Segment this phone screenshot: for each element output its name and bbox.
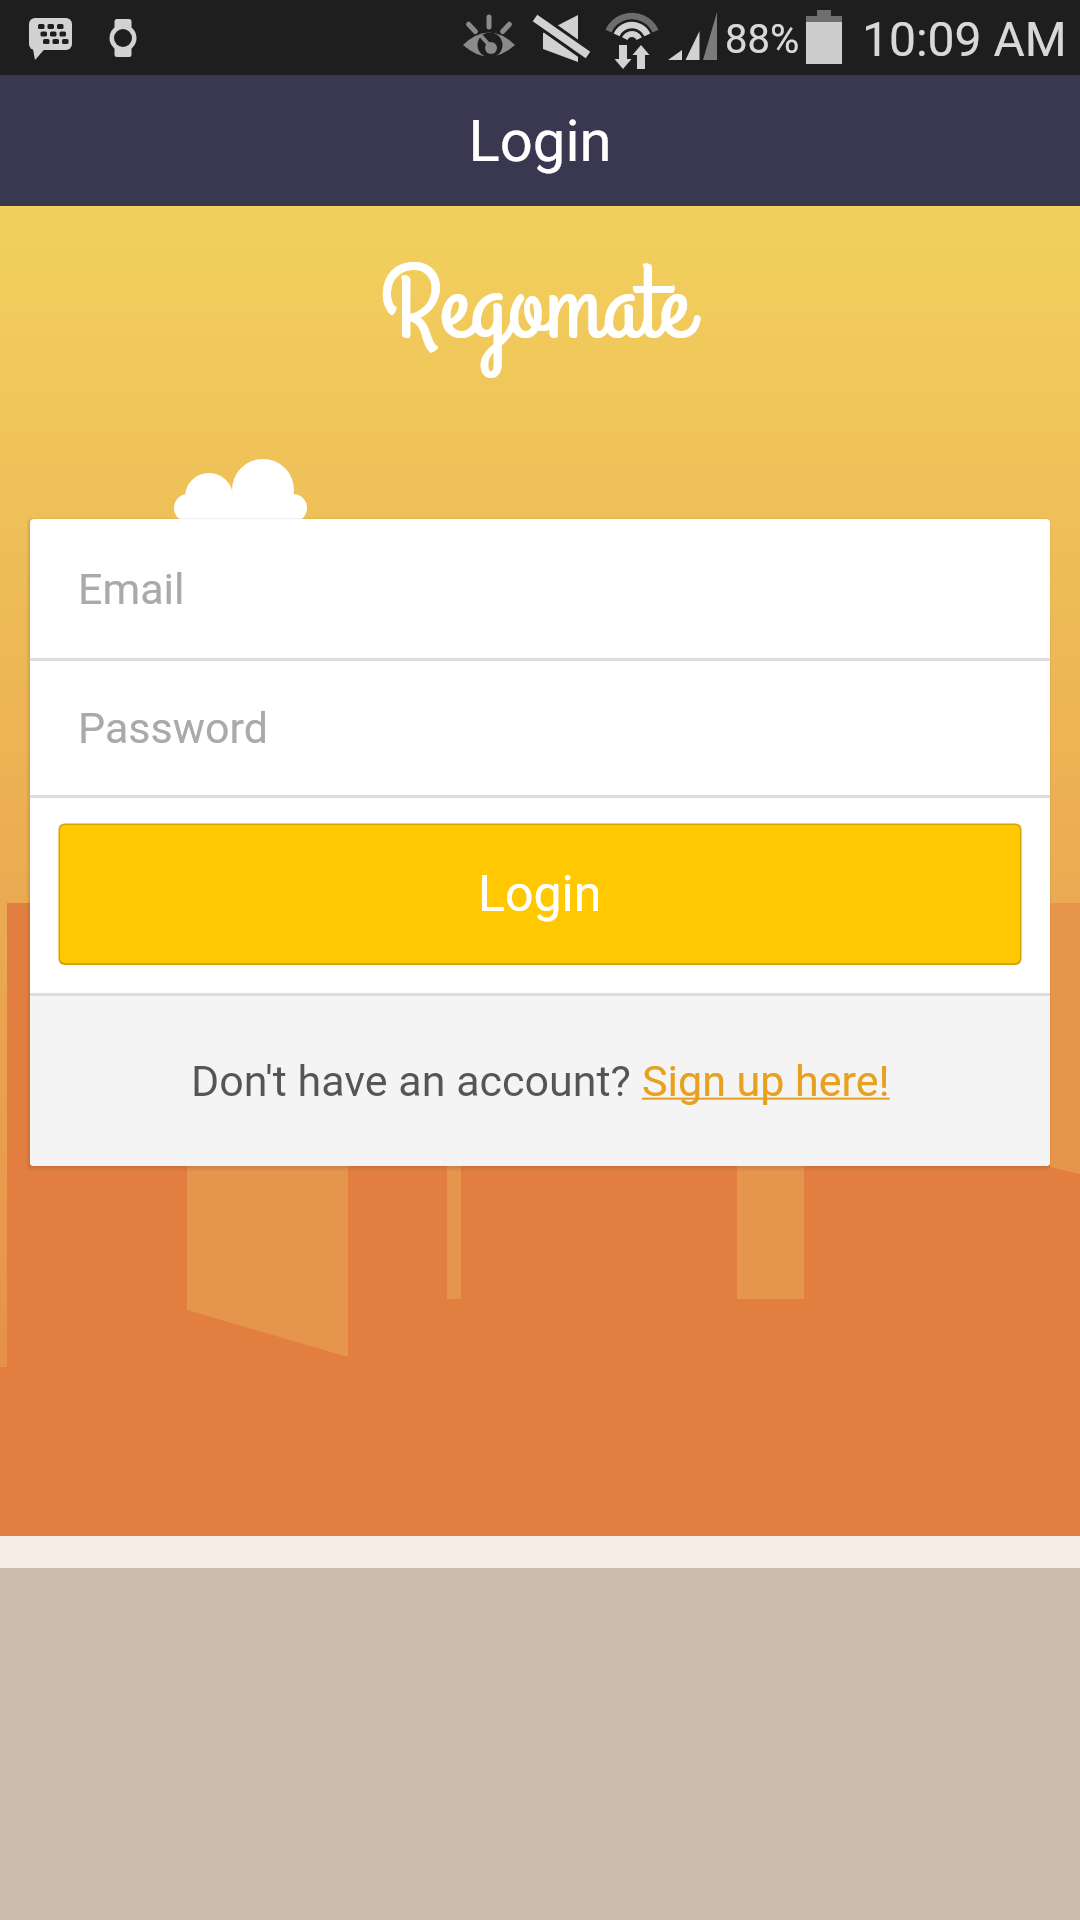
staticText: Login bbox=[468, 107, 612, 175]
staticText: 10:09 AM bbox=[862, 11, 1067, 67]
button[interactable]: Login bbox=[60, 825, 1020, 963]
button[interactable]: Sign up here! bbox=[642, 1046, 890, 1116]
staticText: Login bbox=[478, 865, 602, 924]
button[interactable]: Password bbox=[30, 661, 1050, 795]
staticText: Email bbox=[78, 564, 185, 614]
staticText: Sign up here! bbox=[642, 1056, 890, 1106]
staticText: Don't have an account? bbox=[191, 1056, 642, 1106]
staticText: 88% bbox=[725, 16, 800, 63]
button[interactable]: Email bbox=[30, 519, 1050, 658]
staticText: Password bbox=[78, 703, 268, 753]
staticText: Regomate bbox=[381, 236, 691, 379]
